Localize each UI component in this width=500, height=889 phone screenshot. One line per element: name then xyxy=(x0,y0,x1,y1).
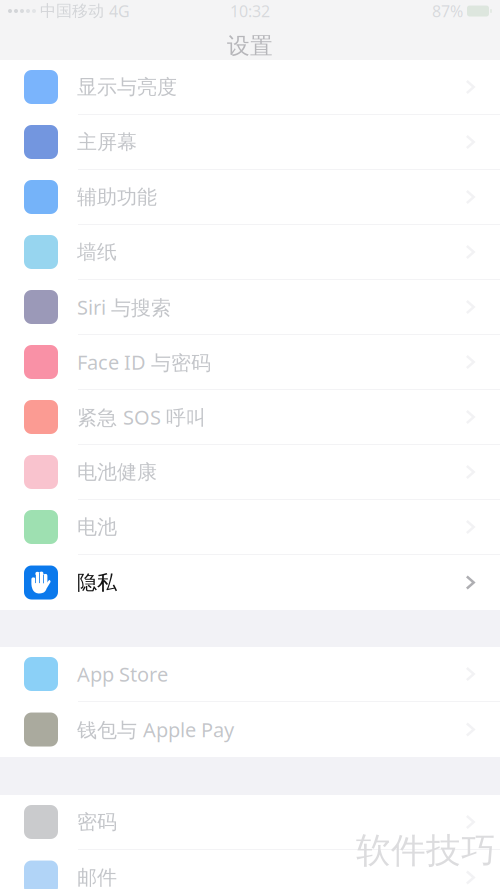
staticText: Face ID 与密码 xyxy=(77,349,211,375)
button[interactable]: 钱包与 Apple Pay xyxy=(0,702,500,757)
staticText: 密码 xyxy=(77,810,117,834)
staticText: 隐私 xyxy=(77,570,117,595)
staticText: Siri 与搜索 xyxy=(77,294,171,320)
staticText: 软件技巧 xyxy=(356,829,496,872)
staticText: 邮件 xyxy=(77,865,117,889)
button[interactable]: 邮件 xyxy=(0,850,500,889)
staticText: 辅助功能 xyxy=(77,185,157,209)
staticText: 主屏幕 xyxy=(77,130,137,154)
button[interactable]: 主屏幕 xyxy=(0,115,500,170)
button[interactable]: 电池健康 xyxy=(0,445,500,500)
button[interactable]: App Store xyxy=(0,647,500,702)
button[interactable]: 隐私 xyxy=(0,555,500,610)
button[interactable]: 墙纸 xyxy=(0,225,500,280)
button[interactable]: 辅助功能 xyxy=(0,170,500,225)
staticText: 中国移动 xyxy=(40,1,104,21)
button[interactable]: 显示与亮度 xyxy=(0,60,500,115)
button[interactable]: Siri 与搜索 xyxy=(0,280,500,335)
staticText: 10:32 xyxy=(230,0,270,22)
button[interactable]: 紧急 SOS 呼叫 xyxy=(0,390,500,445)
button[interactable]: 密码 xyxy=(0,795,500,850)
staticText: App Store xyxy=(77,661,168,687)
staticText: 钱包与 Apple Pay xyxy=(77,716,234,743)
staticText: 87% xyxy=(432,0,463,22)
staticText: 墙纸 xyxy=(77,240,117,264)
button[interactable]: Face ID 与密码 xyxy=(0,335,500,390)
button[interactable]: 电池 xyxy=(0,500,500,555)
staticText: 4G xyxy=(109,0,130,22)
staticText: 电池健康 xyxy=(77,460,157,484)
staticText: 设置 xyxy=(227,32,273,60)
staticText: 电池 xyxy=(77,515,117,539)
staticText: 紧急 SOS 呼叫 xyxy=(77,404,206,430)
staticText: 显示与亮度 xyxy=(77,75,177,99)
